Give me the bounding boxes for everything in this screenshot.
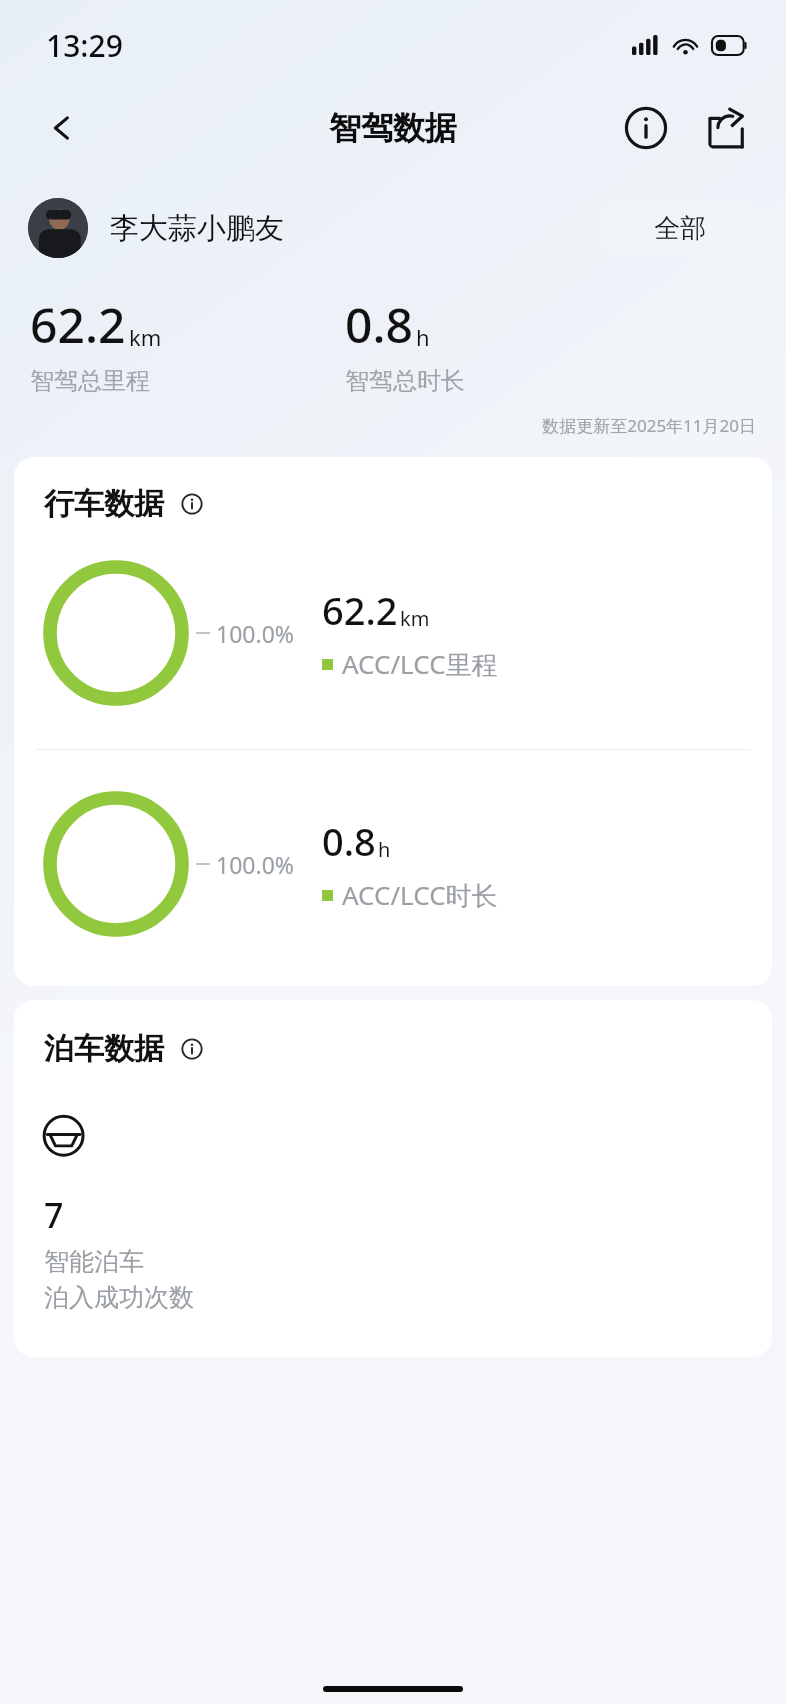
staticText: ACC/LCC时长	[342, 877, 498, 913]
staticText: 泊车数据	[44, 1030, 164, 1068]
staticText: 62.2	[30, 292, 126, 357]
staticText: km	[400, 605, 430, 632]
staticText: 智驾数据	[329, 108, 457, 148]
staticText: 100.0%	[216, 618, 294, 649]
staticText: 李大蒜小鹏友	[110, 210, 284, 247]
button[interactable]: 泊车数据	[14, 1000, 772, 1357]
staticText: 62.2	[322, 584, 398, 636]
staticText: 智驾总时长	[345, 366, 465, 396]
button[interactable]: 行车数据	[14, 457, 772, 986]
staticText: ACC/LCC里程	[342, 646, 498, 682]
button[interactable]: Information	[620, 102, 672, 154]
button[interactable]: 全部	[601, 199, 758, 257]
staticText: 智驾总里程	[30, 366, 150, 396]
staticText: 0.8	[345, 292, 413, 357]
staticText: km	[129, 322, 162, 352]
staticText: 全部	[654, 212, 706, 245]
staticText: 泊入成功次数	[44, 1282, 194, 1313]
staticText: 行车数据	[44, 485, 164, 523]
staticText: 数据更新至2025年11月20日	[0, 414, 756, 437]
staticText: 0.8	[322, 815, 376, 867]
button[interactable]: Info	[176, 1033, 208, 1065]
staticText: 100.0%	[216, 849, 294, 880]
staticText: 7	[44, 1192, 64, 1238]
staticText: h	[378, 836, 391, 863]
button[interactable]: Back	[34, 100, 90, 156]
button[interactable]: Info	[176, 488, 208, 520]
staticText: h	[416, 322, 430, 352]
staticText: 13:29	[46, 25, 123, 66]
staticText: 智能泊车	[44, 1246, 144, 1277]
button[interactable]	[28, 198, 88, 258]
button[interactable]: Share	[702, 102, 754, 154]
